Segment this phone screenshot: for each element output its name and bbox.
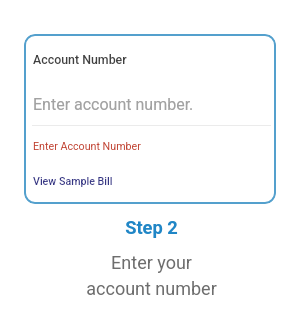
button[interactable]: Account number input field [32, 88, 272, 127]
staticText: Account Number [33, 52, 127, 67]
staticText: Enter your account number [0, 252, 303, 300]
staticText: Enter Account Number [33, 140, 141, 153]
staticText: View Sample Bill [33, 175, 113, 188]
button[interactable]: View Sample Bill [32, 173, 114, 190]
staticText: Step 2 [0, 217, 303, 238]
staticText: Enter account number. [33, 95, 194, 114]
